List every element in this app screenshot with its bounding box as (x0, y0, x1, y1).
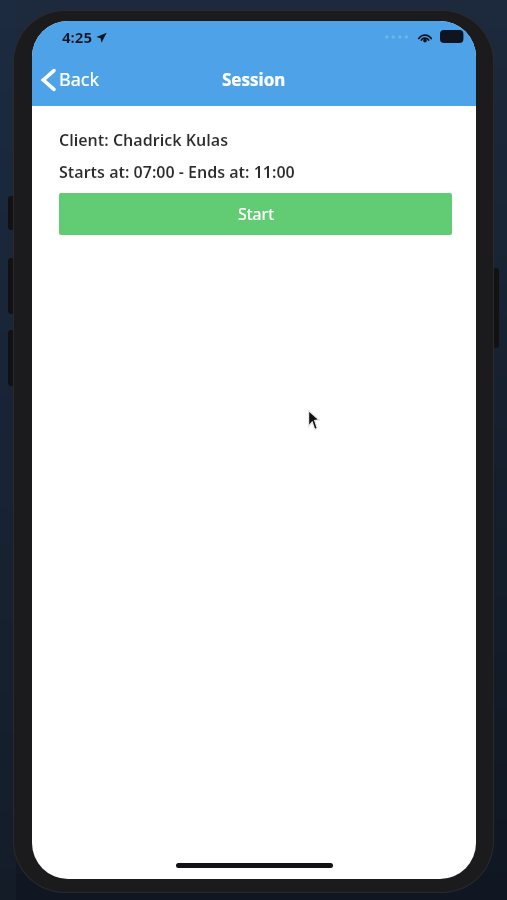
staticText: Start (238, 203, 274, 225)
button[interactable]: Back (32, 61, 112, 98)
button[interactable]: Start (59, 193, 452, 235)
staticText: Starts at: 07:00 - Ends at: 11:00 (59, 161, 295, 183)
staticText: Session (222, 68, 286, 91)
staticText: Client: Chadrick Kulas (59, 129, 229, 151)
staticText: 4:25 (62, 27, 92, 47)
staticText: Back (59, 67, 100, 92)
